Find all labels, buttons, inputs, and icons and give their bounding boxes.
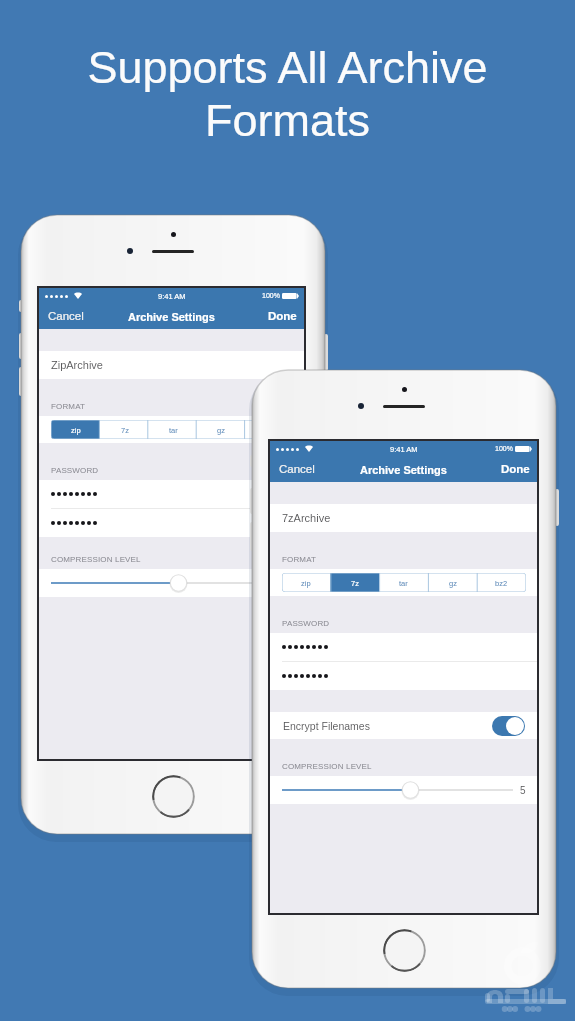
- staticText: Done: [501, 463, 530, 476]
- staticText: gz: [217, 426, 225, 434]
- button[interactable]: 7z: [100, 420, 149, 439]
- staticText: 7zArchive: [282, 512, 331, 524]
- staticText: Done: [268, 310, 297, 323]
- staticText: COMPRESSION LEVEL: [51, 555, 141, 564]
- staticText: tar: [169, 426, 178, 434]
- staticText: 9:41 AM: [158, 292, 186, 300]
- button[interactable]: Done: [492, 457, 537, 482]
- button[interactable]: [270, 633, 537, 661]
- button[interactable]: gz: [428, 573, 477, 592]
- staticText: 5: [520, 785, 526, 796]
- button[interactable]: [39, 509, 304, 537]
- button[interactable]: Encrypt Filenames: [270, 712, 537, 739]
- button[interactable]: Done: [259, 304, 304, 329]
- staticText: zip: [71, 426, 81, 434]
- staticText: Archive Settings: [128, 311, 215, 323]
- button[interactable]: tar: [149, 420, 197, 439]
- button[interactable]: Cancel: [270, 457, 324, 482]
- staticText: 9:41 AM: [390, 445, 418, 453]
- staticText: zip: [301, 579, 311, 587]
- button[interactable]: [270, 662, 537, 690]
- button[interactable]: Home: [383, 929, 426, 972]
- button[interactable]: Cancel: [39, 304, 93, 329]
- button[interactable]: 7zArchive: [270, 504, 537, 532]
- staticText: Encrypt Filenames: [283, 720, 370, 732]
- staticText: FORMAT: [282, 555, 317, 564]
- staticText: bz2: [495, 579, 508, 587]
- staticText: Cancel: [279, 463, 315, 476]
- staticText: 7z: [121, 426, 129, 434]
- button[interactable]: ZipArchive: [39, 351, 304, 379]
- button[interactable]: zip: [51, 420, 100, 439]
- staticText: 100%: [495, 445, 513, 453]
- button[interactable]: tar: [379, 573, 428, 592]
- button[interactable]: zip: [282, 573, 330, 592]
- staticText: COMPRESSION LEVEL: [282, 762, 372, 771]
- button[interactable]: [39, 480, 304, 508]
- staticText: ZipArchive: [51, 359, 103, 371]
- button[interactable]: gz: [197, 420, 245, 439]
- staticText: Supports All Archive Formats: [0, 42, 575, 146]
- staticText: PASSWORD: [51, 466, 99, 475]
- staticText: tar: [399, 579, 408, 587]
- button[interactable]: bz2: [245, 420, 293, 439]
- staticText: 100%: [262, 292, 280, 300]
- staticText: Archive Settings: [360, 464, 447, 476]
- button[interactable]: Home: [152, 775, 195, 818]
- button[interactable]: bz2: [477, 573, 526, 592]
- staticText: 7z: [351, 579, 359, 587]
- staticText: FORMAT: [51, 402, 86, 411]
- staticText: gz: [449, 579, 457, 587]
- staticText: Cancel: [48, 310, 84, 323]
- button[interactable]: 7z: [330, 573, 379, 592]
- staticText: PASSWORD: [282, 619, 330, 628]
